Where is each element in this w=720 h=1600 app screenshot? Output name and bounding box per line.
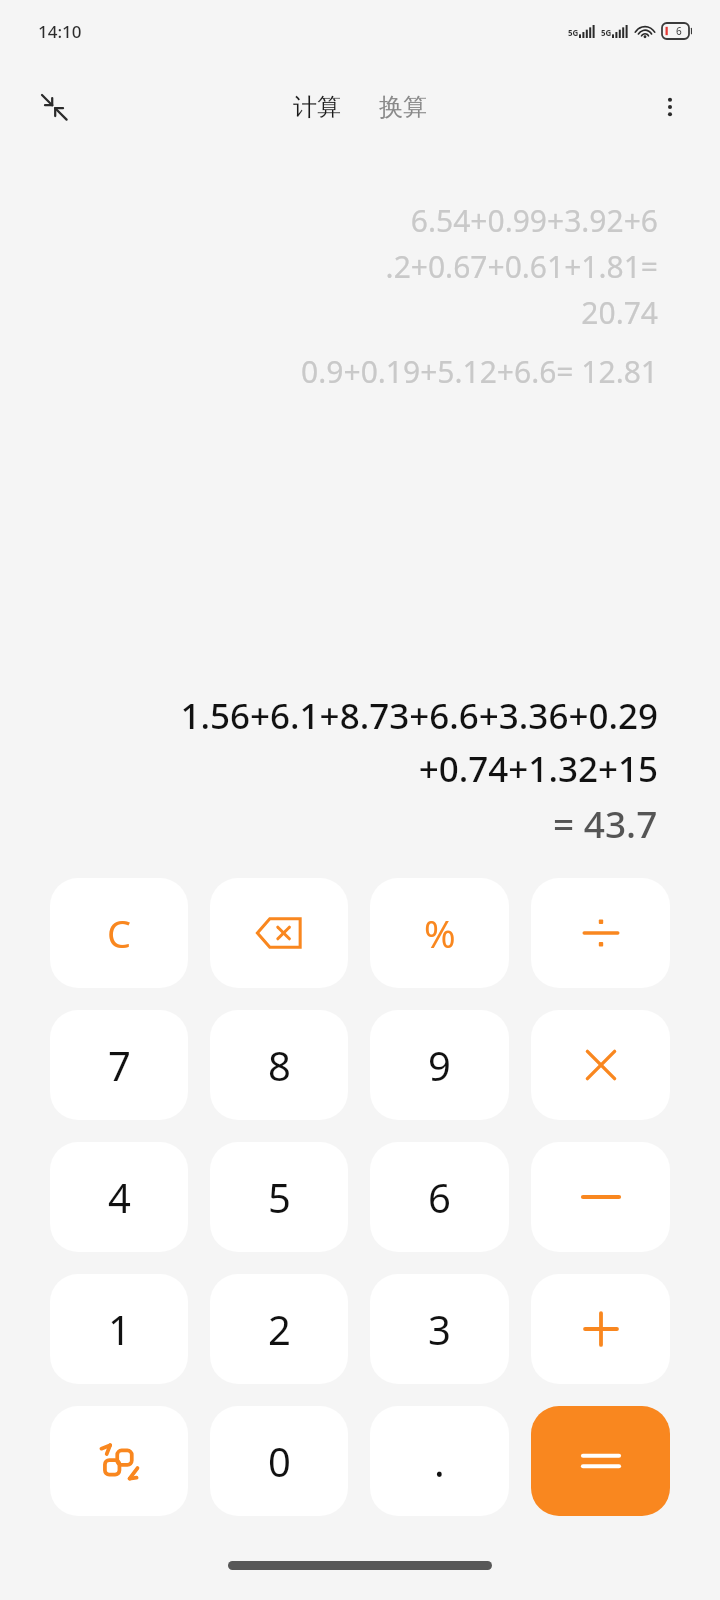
- button[interactable]: scientific: [50, 1406, 188, 1516]
- button[interactable]: 计算: [287, 84, 347, 130]
- button[interactable]: 3: [370, 1274, 509, 1384]
- button[interactable]: Collapse: [26, 79, 82, 135]
- staticText: 9: [428, 1038, 451, 1092]
- staticText: 5: [268, 1170, 291, 1224]
- button[interactable]: 7: [50, 1010, 188, 1120]
- staticText: 3: [428, 1302, 451, 1356]
- staticText: %: [424, 907, 456, 959]
- staticText: C: [107, 907, 132, 959]
- staticText: 换算: [379, 92, 427, 122]
- button[interactable]: equals: [531, 1406, 670, 1516]
- button[interactable]: 2: [210, 1274, 348, 1384]
- staticText: 0: [268, 1434, 291, 1488]
- staticText: 4: [108, 1170, 131, 1224]
- button[interactable]: 9: [370, 1010, 509, 1120]
- staticText: 6: [676, 24, 682, 38]
- button[interactable]: C: [50, 878, 188, 988]
- button[interactable]: plus: [531, 1274, 670, 1384]
- staticText: 2: [268, 1302, 291, 1356]
- button[interactable]: 8: [210, 1010, 348, 1120]
- staticText: 8: [268, 1038, 291, 1092]
- staticText: = 43.7: [553, 798, 658, 848]
- button[interactable]: 6: [370, 1142, 509, 1252]
- staticText: 6: [428, 1170, 451, 1224]
- staticText: 5G: [568, 27, 579, 38]
- button[interactable]: More options: [644, 81, 696, 133]
- button[interactable]: %: [370, 878, 509, 988]
- button[interactable]: 1: [50, 1274, 188, 1384]
- button[interactable]: 5: [210, 1142, 348, 1252]
- button[interactable]: divide: [531, 878, 670, 988]
- staticText: 0.9+0.19+5.12+6.6= 12.81: [301, 351, 658, 392]
- button[interactable]: backspace: [210, 878, 348, 988]
- staticText: 计算: [293, 92, 341, 122]
- staticText: 1.56+6.1+8.73+6.6+3.36+0.29 +0.74+1.32+1…: [180, 692, 658, 792]
- button[interactable]: multiply: [531, 1010, 670, 1120]
- button[interactable]: 4: [50, 1142, 188, 1252]
- staticText: .: [434, 1434, 445, 1488]
- staticText: 1: [108, 1302, 131, 1356]
- button[interactable]: .: [370, 1406, 509, 1516]
- staticText: 14:10: [38, 20, 82, 43]
- staticText: 5G: [601, 27, 612, 38]
- button[interactable]: minus: [531, 1142, 670, 1252]
- staticText: 7: [108, 1038, 131, 1092]
- button[interactable]: 换算: [373, 84, 433, 130]
- button[interactable]: 0: [210, 1406, 348, 1516]
- staticText: 6.54+0.99+3.92+6 .2+0.67+0.61+1.81= 20.7…: [385, 200, 658, 333]
